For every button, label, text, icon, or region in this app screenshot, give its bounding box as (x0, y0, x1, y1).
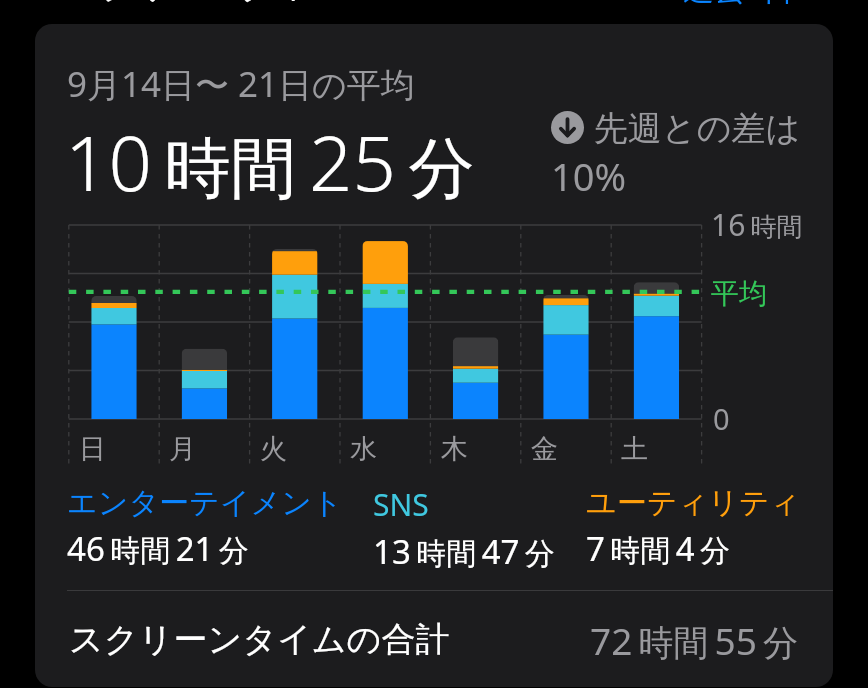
staticText: 平均 (711, 276, 767, 311)
staticText: 7 時間 4 分 (586, 526, 731, 571)
staticText: 火 (260, 432, 287, 466)
staticText: 土 (621, 432, 648, 466)
button[interactable]: エンターテイメント (67, 484, 343, 571)
button[interactable]: SNS (373, 484, 555, 574)
staticText: 9月14日〜 21日の平均 (67, 60, 415, 108)
button[interactable]: スクリーンタイム (67, 0, 345, 7)
staticText: 先週との差は 10% (551, 104, 819, 203)
staticText: 日 (79, 432, 106, 466)
staticText: 木 (441, 432, 468, 466)
staticText: ユーティリティ (586, 484, 801, 522)
button[interactable]: ユーティリティ (586, 484, 801, 571)
staticText: スクリーンタイムの合計 (69, 618, 450, 661)
staticText: 金 (531, 432, 558, 466)
staticText: 16 時間 (711, 204, 803, 245)
button[interactable]: Weekly screen time chart (60, 215, 720, 470)
staticText: 13 時間 47 分 (373, 529, 555, 574)
staticText: 月 (169, 432, 196, 466)
staticText: 46 時間 21 分 (67, 526, 249, 571)
staticText: 10 時間 25 分 (65, 110, 475, 214)
staticText: エンターテイメント (67, 484, 343, 522)
button[interactable]: 過去7日 (683, 0, 794, 9)
staticText: 水 (350, 432, 377, 466)
button[interactable]: スクリーンタイムの合計 (67, 591, 833, 688)
staticText: 72 時間 55 分 (590, 615, 799, 665)
staticText: SNS (373, 484, 429, 525)
staticText: 0 (713, 399, 730, 438)
button[interactable]: Difference from last week (551, 104, 819, 203)
